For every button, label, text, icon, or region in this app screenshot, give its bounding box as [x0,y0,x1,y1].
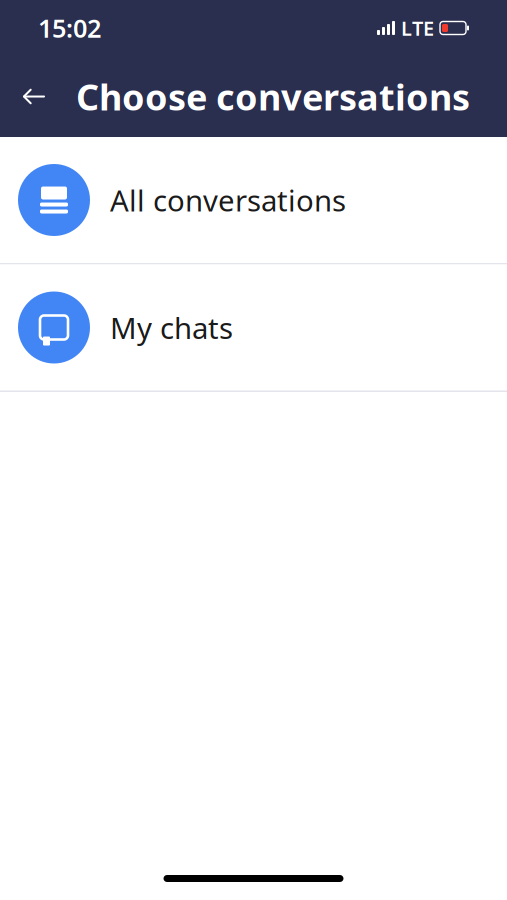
button[interactable]: All conversations [0,137,507,264]
staticText: LTE [401,15,434,41]
button[interactable]: My chats [0,264,507,392]
staticText: Choose conversations [76,73,470,120]
staticText: My chats [110,308,233,347]
staticText: 15:02 [38,11,101,45]
staticText: All conversations [110,180,346,219]
button[interactable]: Back [8,70,60,122]
